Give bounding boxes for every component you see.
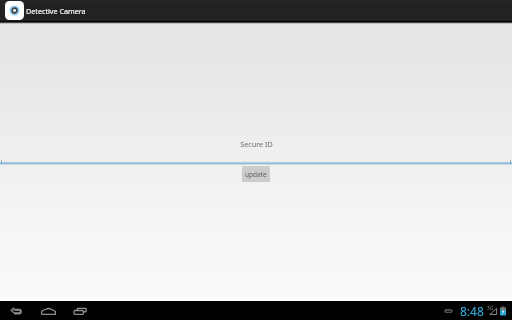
other: USB debugging xyxy=(445,308,452,314)
button[interactable]: Recent apps xyxy=(72,303,88,319)
other: Battery charging xyxy=(500,305,506,316)
button[interactable]: update xyxy=(242,166,270,182)
staticText: Secure ID xyxy=(240,139,273,149)
button[interactable]: Home xyxy=(40,303,56,319)
staticText: 3G xyxy=(487,305,493,311)
button[interactable]: App icon xyxy=(5,1,24,20)
other: Mobile signal 3G xyxy=(487,305,498,316)
button[interactable]: Back xyxy=(9,304,23,318)
button[interactable]: Secure ID xyxy=(0,138,512,150)
staticText: Detective Camera xyxy=(26,6,86,16)
staticText: update xyxy=(245,170,267,179)
staticText: 8:48 xyxy=(460,303,484,319)
